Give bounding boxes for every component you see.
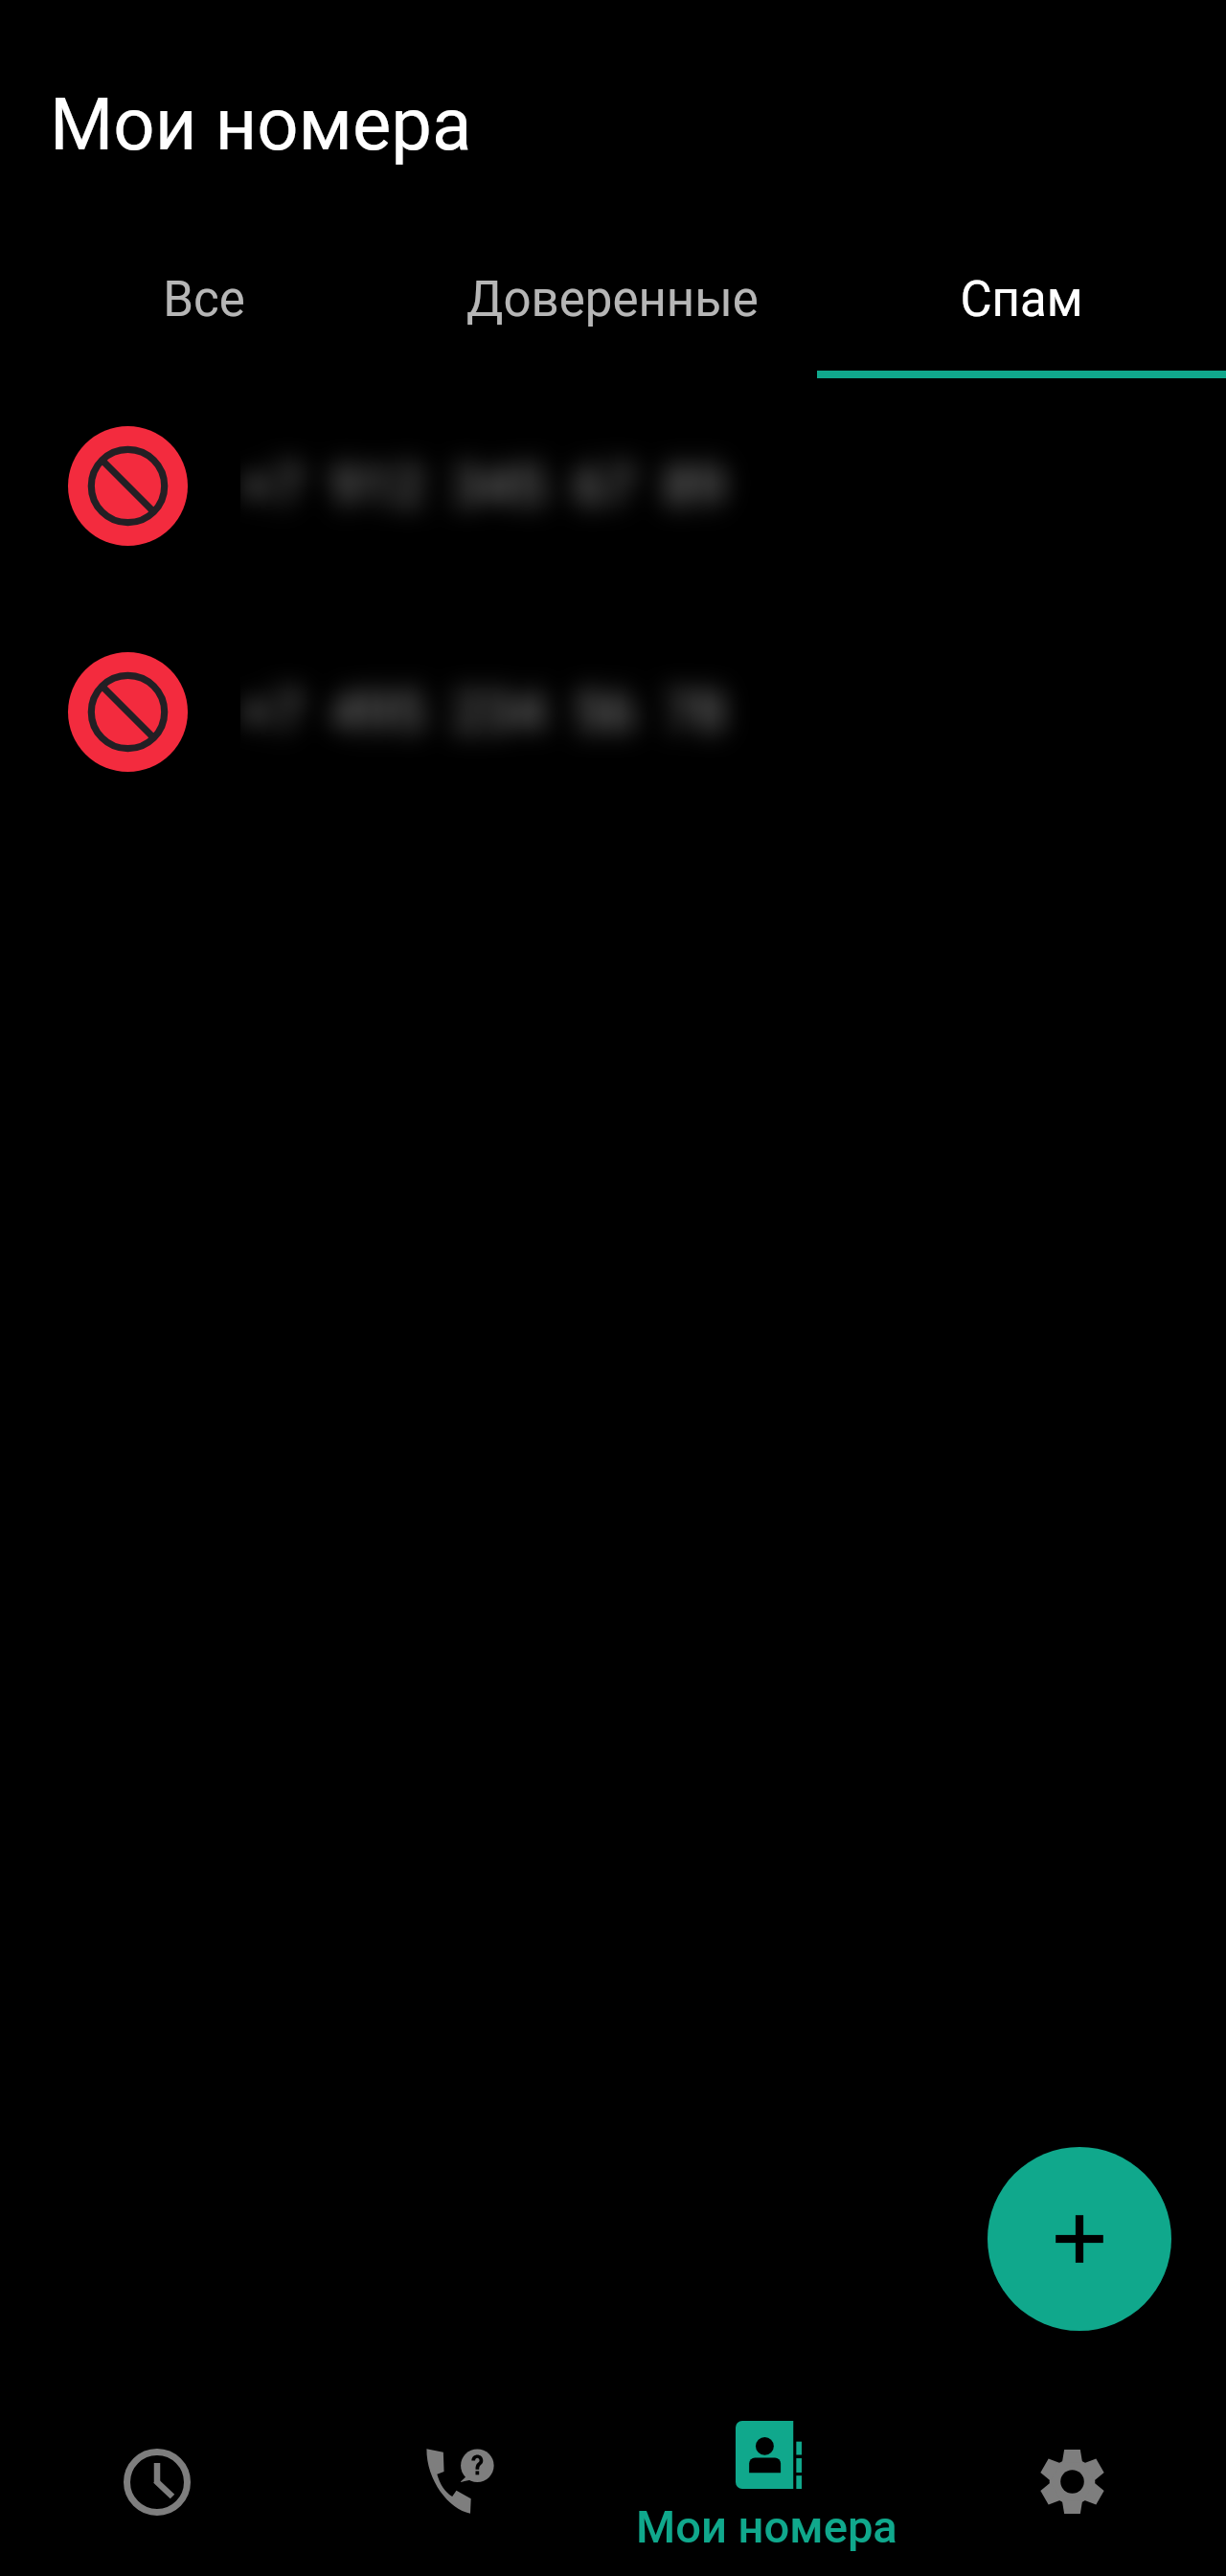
button[interactable]: Неизвестные номера <box>306 2356 613 2576</box>
button[interactable]: +7 495 234 56 78 <box>0 635 1226 788</box>
staticText: +7 495 234 56 78 <box>240 679 726 744</box>
staticText: Мои номера <box>636 2500 897 2553</box>
button[interactable]: Доверенные <box>408 232 817 378</box>
staticText: Доверенные <box>466 271 759 328</box>
button[interactable]: Настройки <box>919 2356 1226 2576</box>
button[interactable]: Спам <box>817 232 1226 378</box>
button[interactable]: Добавить номер <box>988 2147 1171 2331</box>
button[interactable]: +7 912 345 67 89 <box>0 409 1226 562</box>
staticText: Мои номера <box>50 81 472 167</box>
button[interactable]: Все <box>0 232 408 378</box>
staticText: Спам <box>960 271 1083 328</box>
staticText: +7 912 345 67 89 <box>240 453 726 518</box>
button[interactable]: История вызовов <box>0 2356 306 2576</box>
button[interactable]: Мои номера <box>613 2356 919 2576</box>
staticText: Все <box>163 271 245 328</box>
